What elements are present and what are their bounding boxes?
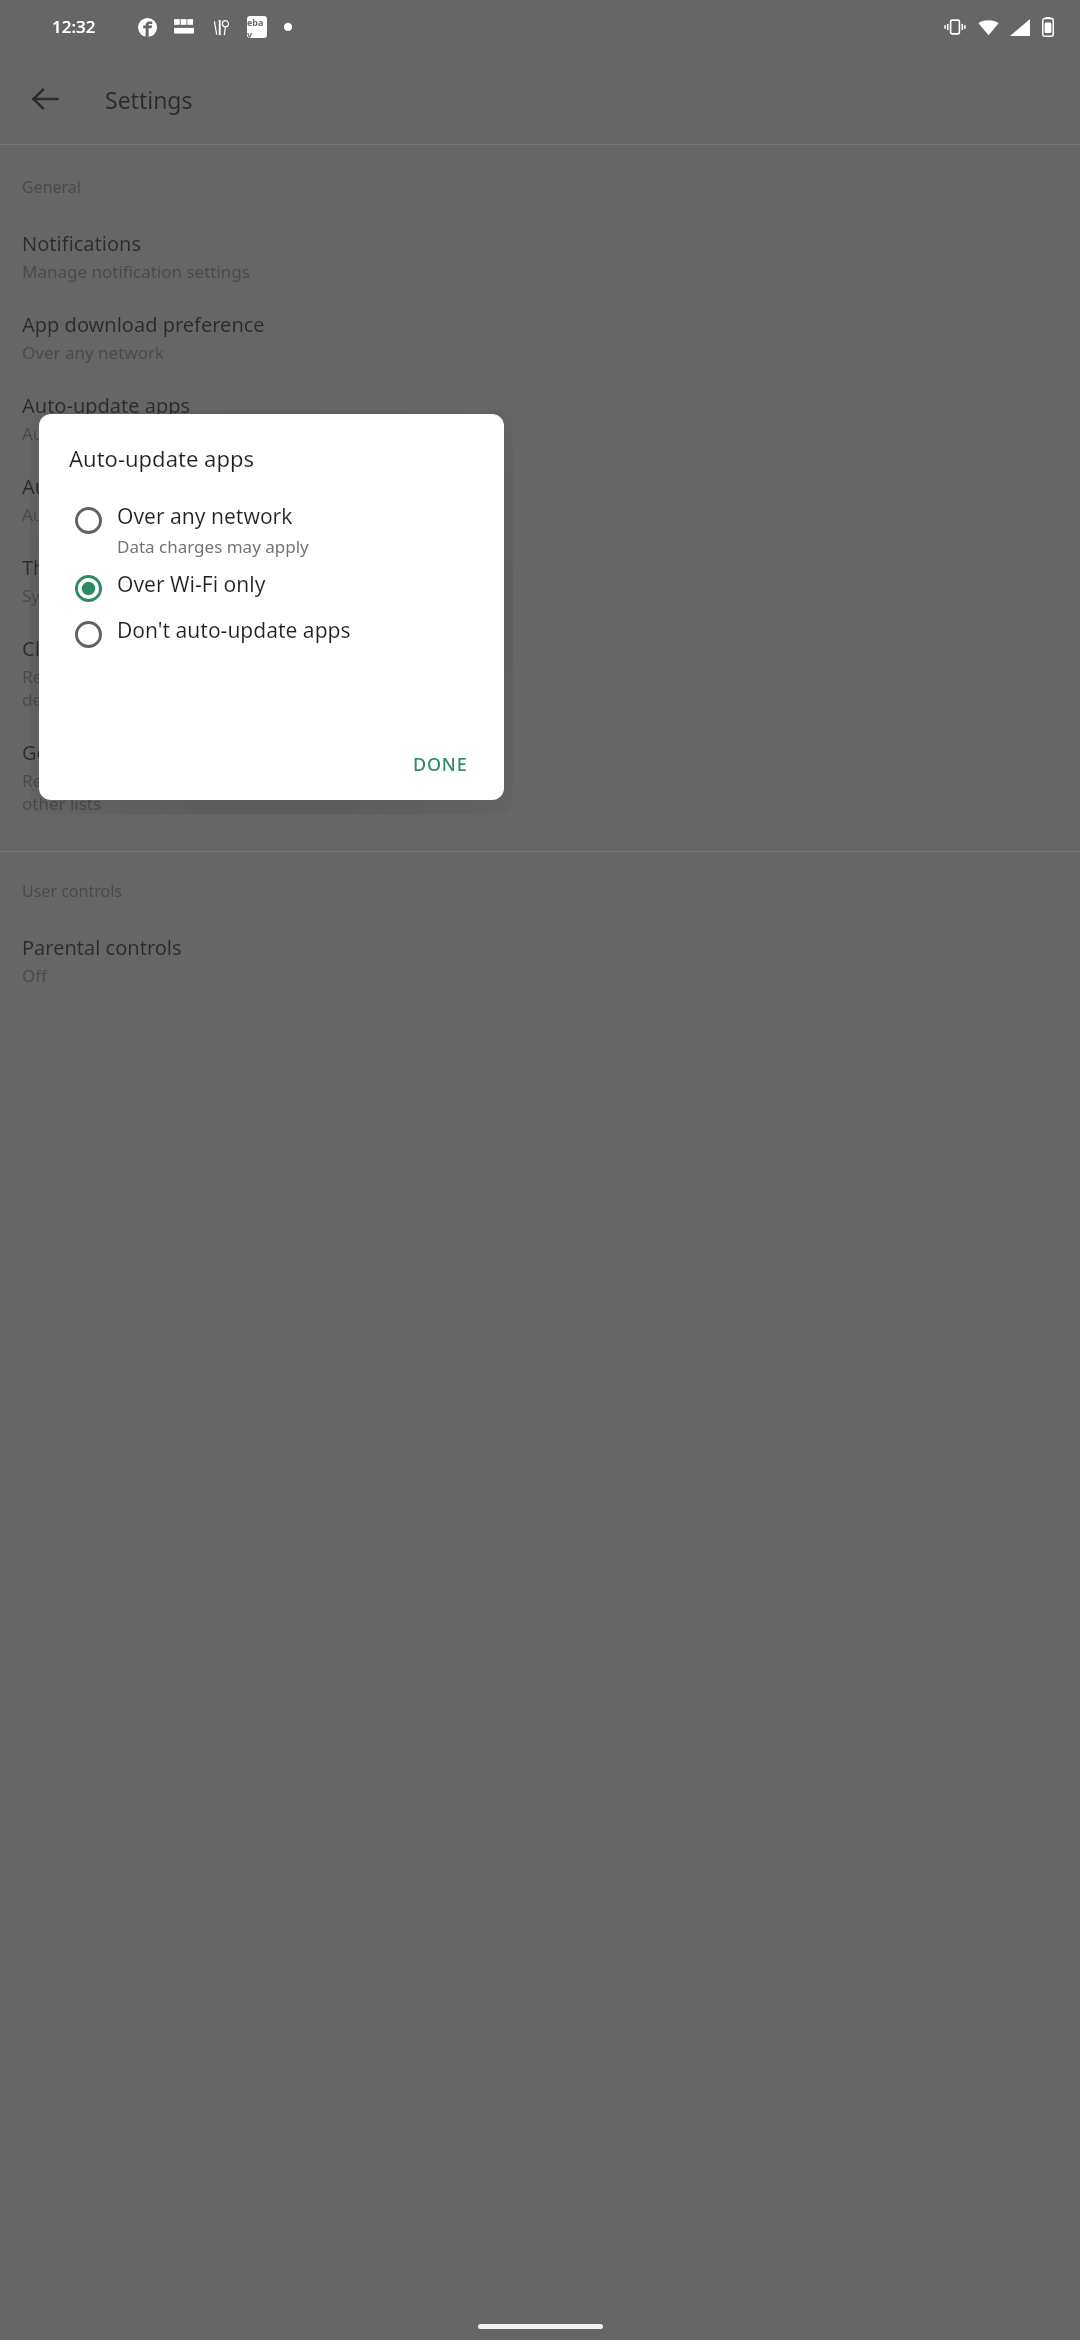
staticText: Clear local search history: [22, 635, 257, 662]
staticText: Auto-update apps over Wi-Fi only: [22, 422, 287, 445]
staticText: Don't auto-update apps: [117, 616, 351, 645]
staticText: General: [22, 176, 81, 198]
button[interactable]: Auto-play videos: [0, 459, 1080, 540]
button[interactable]: Themes: [0, 540, 1080, 621]
staticText: User controls: [22, 880, 122, 902]
staticText: Remove all the searches you've performed…: [22, 665, 438, 711]
staticText: Data charges may apply: [117, 535, 309, 558]
staticText: Auto-play videos: [22, 473, 178, 500]
button[interactable]: Notifications: [0, 216, 1080, 297]
button[interactable]: Clear local search history: [0, 621, 1080, 725]
staticText: Parental controls: [22, 934, 182, 961]
staticText: Settings: [105, 84, 193, 115]
button[interactable]: Google Play preferences: [0, 725, 1080, 829]
staticText: System default: [22, 584, 141, 607]
button[interactable]: Don't auto-update apps: [39, 611, 504, 657]
staticText: Themes: [22, 554, 97, 581]
button[interactable]: Parental controls: [0, 920, 1080, 1001]
staticText: Notifications: [22, 230, 141, 257]
staticText: App download preference: [22, 311, 265, 338]
staticText: Off: [22, 964, 47, 987]
button[interactable]: Back: [17, 71, 73, 127]
staticText: Remove history in your wishlist, the Bet…: [22, 769, 456, 815]
button[interactable]: DONE: [397, 741, 484, 788]
staticText: 12:32: [52, 15, 96, 38]
staticText: Over any network: [22, 341, 165, 364]
button[interactable]: Over any network: [39, 497, 504, 565]
staticText: ebay: [247, 16, 267, 38]
staticText: Over any network: [117, 502, 293, 531]
staticText: Auto-play videos over Wi-Fi only: [22, 503, 276, 526]
staticText: Manage notification settings: [22, 260, 250, 283]
staticText: Google Play preferences: [22, 739, 251, 766]
button[interactable]: Auto-update apps: [0, 378, 1080, 459]
staticText: Auto-update apps: [22, 392, 191, 419]
staticText: Auto-update apps: [69, 443, 254, 473]
button[interactable]: App download preference: [0, 297, 1080, 378]
staticText: Over Wi-Fi only: [117, 570, 266, 599]
staticText: DONE: [413, 752, 468, 777]
button[interactable]: Over Wi-Fi only: [39, 565, 504, 611]
